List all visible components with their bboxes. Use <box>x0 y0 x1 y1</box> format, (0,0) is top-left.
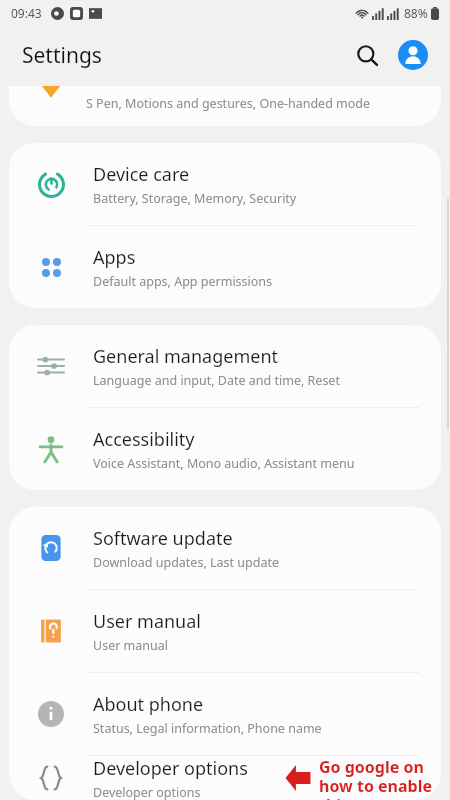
staticText: 88% <box>404 5 428 21</box>
staticText: About phone <box>93 692 204 717</box>
staticText: Apps <box>93 245 136 270</box>
button[interactable]: Search <box>346 34 388 76</box>
staticText: Accessibility <box>93 427 195 452</box>
staticText: Battery, Storage, Memory, Security <box>93 190 297 207</box>
staticText: 09:43 <box>11 5 42 21</box>
staticText: Go google on how to enable this <box>319 756 433 800</box>
staticText: Default apps, App permissions <box>93 273 273 290</box>
staticText: User manual <box>93 637 168 654</box>
staticText: Voice Assistant, Mono audio, Assistant m… <box>93 455 355 472</box>
staticText: S Pen, Motions and gestures, One-handed … <box>86 95 371 112</box>
staticText: Device care <box>93 162 190 187</box>
button[interactable]: Software update <box>9 507 441 589</box>
button[interactable]: Device care <box>9 143 441 225</box>
button[interactable]: About phone <box>9 673 441 755</box>
staticText: Settings <box>22 41 102 70</box>
staticText: General management <box>93 344 279 369</box>
button[interactable]: Developer options <box>9 756 441 800</box>
staticText: Language and input, Date and time, Reset <box>93 372 340 389</box>
staticText: Status, Legal information, Phone name <box>93 720 322 737</box>
staticText: Developer options <box>93 756 248 781</box>
button[interactable]: Apps <box>9 226 441 308</box>
staticText: Download updates, Last update <box>93 554 279 571</box>
button[interactable]: Accessibility <box>9 408 441 490</box>
button[interactable]: Account <box>392 34 434 76</box>
staticText: User manual <box>93 609 201 634</box>
button[interactable]: User manual <box>9 590 441 672</box>
button[interactable]: General management <box>9 325 441 407</box>
staticText: Software update <box>93 526 233 551</box>
staticText: Developer options <box>93 784 201 800</box>
button[interactable]: S Pen, Motions and gestures, One-handed … <box>9 86 441 126</box>
